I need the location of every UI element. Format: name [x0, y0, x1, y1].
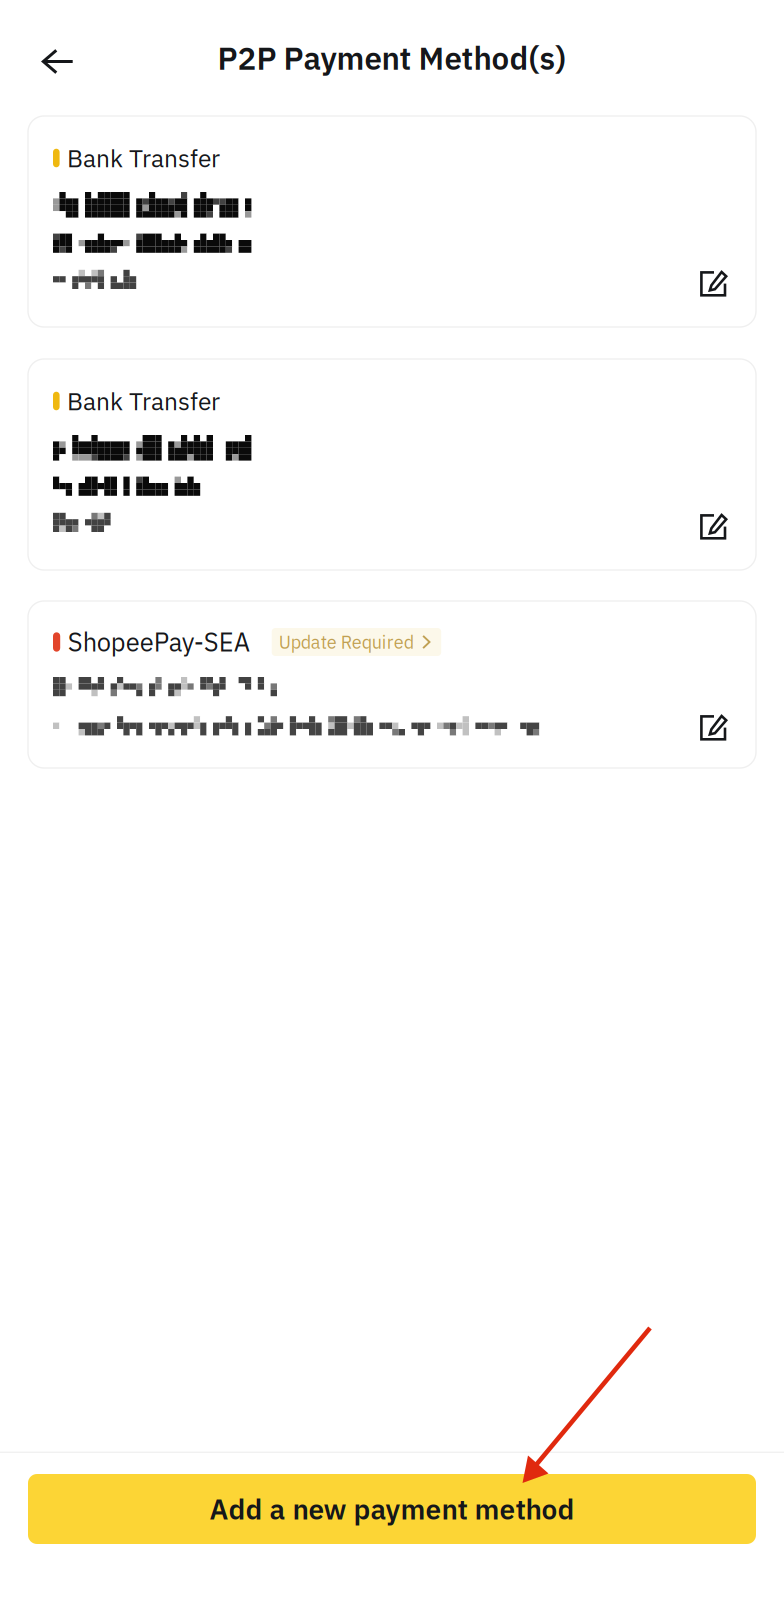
staticText: P2P Payment Method(s) — [217, 38, 566, 78]
staticText: Bank Transfer — [67, 385, 220, 417]
staticText: ShopeePay-SEA — [68, 625, 250, 658]
button[interactable]: Bank Transfer — [28, 359, 756, 570]
staticText: Update Required — [279, 630, 414, 654]
button[interactable]: Back — [27, 27, 89, 89]
button[interactable]: Add a new payment method — [28, 1474, 756, 1544]
button[interactable]: ShopeePay-SEA — [28, 601, 756, 768]
staticText: Bank Transfer — [67, 142, 220, 174]
staticText: Add a new payment method — [209, 1491, 574, 1527]
button[interactable]: Bank Transfer — [28, 116, 756, 327]
